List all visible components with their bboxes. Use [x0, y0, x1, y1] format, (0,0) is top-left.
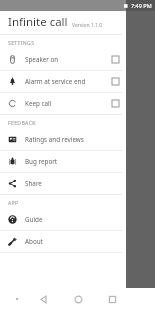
staticText: Bug report [25, 157, 58, 166]
button[interactable]: Menu dot [12, 294, 22, 304]
staticText: Alarm at service end [25, 77, 112, 86]
button[interactable]: About [0, 231, 126, 252]
staticText: Infinite call [8, 14, 68, 30]
button[interactable]: Bug report [0, 151, 126, 172]
staticText: Share [25, 179, 42, 188]
button[interactable]: Recents [103, 290, 121, 308]
button[interactable]: Guide [0, 209, 126, 230]
button[interactable]: Alarm at service end [0, 71, 126, 92]
button[interactable]: Back [34, 290, 52, 308]
staticText: Keep call [25, 99, 112, 108]
staticText: SETTINGS [8, 39, 35, 46]
button[interactable]: Speaker on [0, 49, 126, 70]
staticText: APP [8, 199, 19, 206]
staticText: Ratings and reviews [25, 135, 84, 144]
staticText: FEEDBACK [8, 119, 36, 126]
button[interactable]: Share [0, 173, 126, 194]
staticText: Guide [25, 215, 43, 224]
staticText: Speaker on [25, 55, 112, 64]
staticText: About [25, 237, 43, 246]
button[interactable]: Keep call [0, 93, 126, 114]
button[interactable]: Home [69, 290, 87, 308]
staticText: Version 1.1.0 [72, 22, 103, 29]
button[interactable]: Ratings and reviews [0, 129, 126, 150]
staticText: 7:49 PM [131, 2, 152, 9]
